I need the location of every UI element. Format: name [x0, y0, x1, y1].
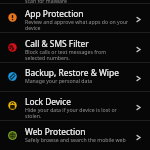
other: Web Protection [136, 135, 141, 140]
other: Backup, Restore & Wipe [136, 76, 141, 81]
staticText: Block calls or text messages from select… [25, 48, 137, 61]
staticText: App Protection [25, 8, 84, 19]
staticText: scan for malware [25, 0, 67, 4]
button[interactable]: Call & SMS Filter [0, 34, 150, 63]
staticText: Safely browse and search the mobile web [25, 136, 137, 143]
staticText: Hide your data if your device is lost or… [25, 106, 137, 119]
staticText: Web Protection [25, 126, 86, 137]
button[interactable]: Backup, Restore & Wipe [0, 63, 150, 92]
staticText: Review and approve what apps do on your … [25, 18, 137, 31]
staticText: Lock Device [25, 96, 72, 107]
staticText: Backup, Restore & Wipe [25, 67, 119, 78]
button[interactable]: App Protection [0, 4, 150, 33]
staticText: Call & SMS Filter [25, 38, 89, 49]
other: App Protection [136, 17, 141, 22]
staticText: Manage your personal data [25, 77, 137, 84]
button[interactable]: Web Protection [0, 122, 150, 150]
button[interactable]: Lock Device [0, 92, 150, 121]
other: Lock Device [136, 105, 141, 110]
other: Call & SMS Filter [136, 47, 141, 52]
